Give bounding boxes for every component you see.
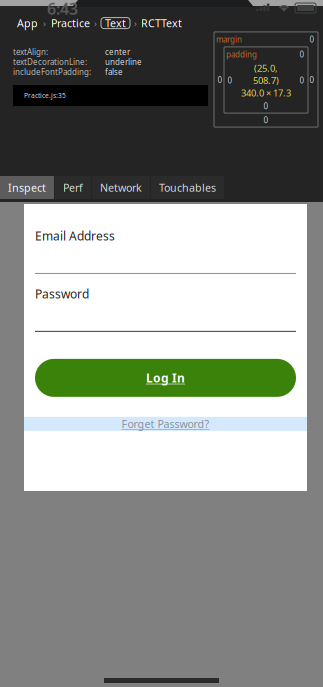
staticText: Perf	[63, 180, 83, 195]
staticText: Forget Password?	[121, 417, 209, 431]
staticText: includeFontPadding:	[13, 67, 91, 77]
staticText: 0	[263, 101, 268, 111]
button[interactable]: Text	[101, 18, 130, 29]
button[interactable]: Forget Password?	[24, 417, 307, 431]
staticText: 0	[263, 115, 268, 125]
staticText: Log In	[146, 370, 185, 386]
staticText: 6:43	[47, 0, 78, 19]
button[interactable]: App	[17, 16, 38, 30]
staticText: padding	[226, 49, 257, 60]
staticText: RCTText	[141, 16, 182, 30]
staticText: 508.7)	[253, 74, 279, 87]
staticText: 0	[299, 49, 304, 60]
staticText: App	[17, 16, 38, 30]
staticText: Network	[100, 180, 142, 195]
staticText: 0	[309, 75, 314, 85]
staticText: 0	[217, 75, 222, 85]
button[interactable]: RCTText	[141, 16, 182, 30]
staticText: ›	[43, 17, 46, 29]
staticText: 0	[227, 75, 232, 86]
staticText: margin	[216, 34, 242, 45]
staticText: (25.0,	[254, 62, 278, 74]
staticText: Text	[105, 16, 126, 30]
staticText: underline	[105, 57, 142, 67]
staticText: Touchables	[159, 180, 216, 195]
button[interactable]: Perf	[55, 176, 91, 199]
staticText: textAlign:	[13, 47, 48, 57]
staticText: Password	[35, 286, 89, 302]
button[interactable]: Log In	[35, 359, 296, 397]
staticText: false	[105, 67, 123, 77]
staticText: 340.0 × 17.3	[241, 87, 291, 99]
staticText: 0	[299, 75, 304, 86]
button[interactable]: Network	[92, 176, 150, 199]
button[interactable]: Inspect	[0, 176, 54, 199]
button[interactable]: Touchables	[151, 176, 224, 199]
staticText: center	[105, 47, 130, 57]
staticText: Inspect	[8, 180, 46, 195]
staticText: Practice.js:35	[24, 91, 66, 100]
button[interactable]: Practice	[51, 16, 90, 30]
staticText: Practice	[51, 16, 90, 30]
staticText: Email Address	[35, 228, 115, 244]
staticText: 0	[309, 34, 314, 45]
staticText: ›	[134, 17, 137, 29]
staticText: textDecorationLine:	[13, 57, 87, 67]
staticText: ›	[94, 17, 97, 29]
